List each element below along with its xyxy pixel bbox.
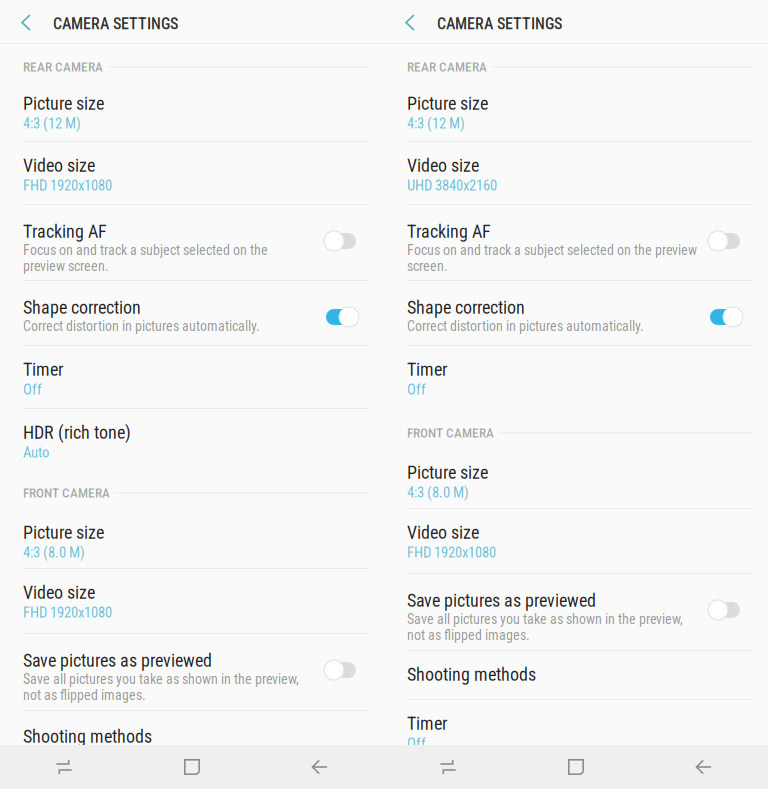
staticText: Shooting methods [23,726,152,747]
staticText: CAMERA SETTINGS [437,14,562,33]
staticText: Video size [407,522,479,543]
staticText: Shape correction [407,297,525,318]
staticText: not as flipped images. [407,627,530,643]
staticText: Tracking AF [407,221,491,242]
button[interactable]: Video size [384,142,768,205]
staticText: Correct distortion in pictures automatic… [407,318,644,334]
staticText: Video size [23,582,95,603]
button[interactable]: Picture size [0,509,384,569]
staticText: Off [23,381,42,398]
button[interactable]: Back [256,745,384,789]
button[interactable]: Timer [384,700,768,746]
staticText: FHD 1920x1080 [407,544,496,561]
button[interactable]: Picture size [0,80,384,141]
button[interactable]: Video size [384,509,768,574]
staticText: FHD 1920x1080 [23,604,112,621]
staticText: Correct distortion in pictures automatic… [23,318,260,334]
button[interactable]: Recent apps [384,745,512,789]
button[interactable]: Tracking AF [0,204,384,280]
button[interactable]: Timer [0,346,384,409]
staticText: Timer [407,713,447,734]
button[interactable]: Video size [0,142,384,205]
button[interactable]: Save pictures as previewed [0,633,384,710]
button[interactable]: Timer [384,346,768,409]
staticText: Timer [407,359,447,380]
staticText: Focus on and track a subject selected on… [23,242,268,258]
staticText: Shape correction [23,297,141,318]
button[interactable]: Shooting methods [0,714,384,749]
button[interactable]: Home [512,745,640,789]
staticText: preview screen. [23,258,109,274]
staticText: 4:3 (12 M) [407,115,465,132]
staticText: FRONT CAMERA [407,425,494,441]
button[interactable]: Save pictures as previewed [384,573,768,650]
staticText: Video size [23,155,95,176]
staticText: Picture size [23,522,104,543]
button[interactable]: Back [5,0,47,44]
staticText: 4:3 (8.0 M) [23,544,85,561]
staticText: REAR CAMERA [23,59,103,75]
staticText: FRONT CAMERA [23,485,110,501]
button[interactable]: Shape correction [0,280,384,345]
staticText: FHD 1920x1080 [23,177,112,194]
staticText: Save pictures as previewed [407,590,596,611]
staticText: UHD 3840x2160 [407,177,497,194]
staticText: Save all pictures you take as shown in t… [23,671,299,687]
button[interactable]: Picture size [384,80,768,141]
staticText: Auto [23,444,49,461]
button[interactable]: Back [389,0,431,44]
staticText: Picture size [407,93,488,114]
staticText: Picture size [407,462,488,483]
button[interactable]: Back [640,745,768,789]
staticText: Tracking AF [23,221,107,242]
staticText: Focus on and track a subject selected on… [407,242,697,258]
staticText: HDR (rich tone) [23,422,131,443]
staticText: Off [407,381,426,398]
button[interactable]: Picture size [384,449,768,509]
staticText: not as flipped images. [23,687,146,703]
staticText: Picture size [23,93,104,114]
button[interactable]: Home [128,745,256,789]
staticText: screen. [407,258,448,274]
button[interactable]: Shooting methods [384,652,768,699]
staticText: Timer [23,359,63,380]
button[interactable]: Video size [0,569,384,634]
staticText: Shooting methods [407,664,536,685]
staticText: Save pictures as previewed [23,650,212,671]
staticText: CAMERA SETTINGS [53,14,178,33]
staticText: 4:3 (12 M) [23,115,81,132]
staticText: Save all pictures you take as shown in t… [407,611,683,627]
button[interactable]: Tracking AF [384,204,768,280]
button[interactable]: HDR (rich tone) [0,409,384,472]
staticText: 4:3 (8.0 M) [407,484,469,501]
button[interactable]: Shape correction [384,280,768,345]
staticText: Off [407,735,426,752]
staticText: Video size [407,155,479,176]
staticText: REAR CAMERA [407,59,487,75]
button[interactable]: Recent apps [0,745,128,789]
